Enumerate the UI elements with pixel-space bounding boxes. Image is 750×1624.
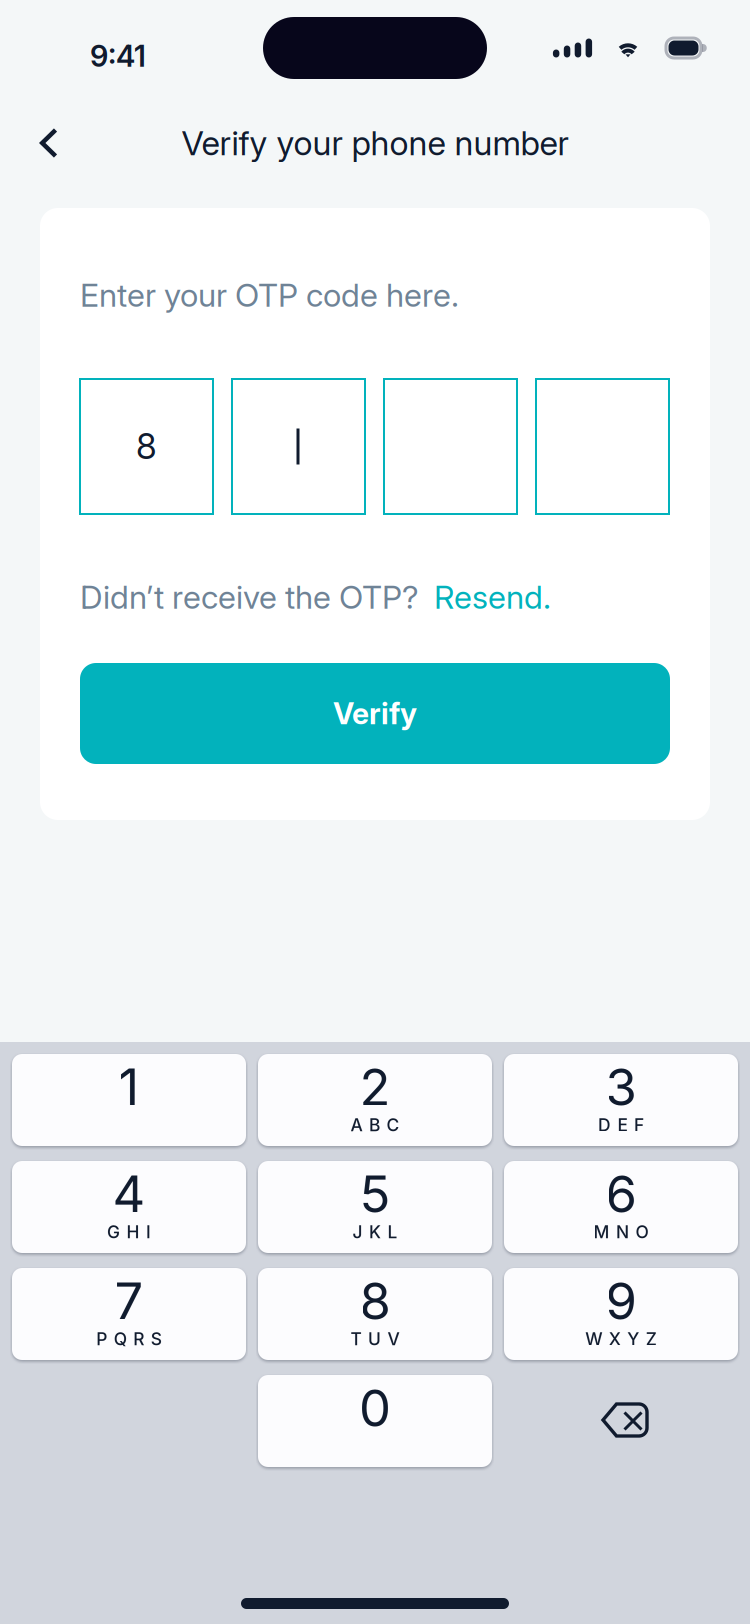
button[interactable]: Resend.: [434, 578, 551, 616]
button[interactable]: 9: [504, 1268, 738, 1360]
button[interactable]: OTP digit: [384, 379, 517, 514]
staticText: Verify: [333, 696, 417, 731]
button[interactable]: 6: [504, 1161, 738, 1253]
button[interactable]: Verify: [80, 663, 670, 764]
button[interactable]: 5: [258, 1161, 492, 1253]
staticText: 0: [359, 1377, 391, 1439]
staticText: DEF: [598, 1114, 644, 1135]
button[interactable]: OTP digit: [536, 379, 669, 514]
button[interactable]: OTP digit: [232, 379, 365, 514]
staticText: ABC: [350, 1114, 399, 1135]
staticText: 5: [359, 1163, 390, 1225]
button[interactable]: Back: [18, 112, 80, 174]
staticText: 8: [359, 1270, 390, 1332]
staticText: 9:41: [90, 38, 146, 74]
staticText: 3: [605, 1056, 636, 1118]
staticText: JKL: [352, 1221, 397, 1242]
staticText: 8: [136, 425, 157, 467]
staticText: MNO: [593, 1221, 648, 1242]
button[interactable]: 7: [12, 1268, 246, 1360]
staticText: 4: [112, 1163, 145, 1225]
button[interactable]: Delete: [504, 1375, 738, 1467]
staticText: 1: [118, 1056, 139, 1118]
staticText: 6: [605, 1163, 636, 1225]
staticText: Resend.: [434, 578, 551, 616]
staticText: Verify your phone number: [181, 123, 568, 163]
button[interactable]: 0: [258, 1375, 492, 1467]
button[interactable]: 1: [12, 1054, 246, 1146]
button[interactable]: 3: [504, 1054, 738, 1146]
staticText: Enter your OTP code here.: [80, 276, 459, 314]
staticText: GHI: [107, 1221, 151, 1242]
button[interactable]: 2: [258, 1054, 492, 1146]
staticText: WXYZ: [585, 1328, 657, 1349]
button[interactable]: 8: [258, 1268, 492, 1360]
staticText: PQRS: [96, 1328, 162, 1349]
staticText: 7: [114, 1270, 143, 1332]
staticText: 2: [359, 1056, 390, 1118]
button[interactable]: OTP digit: [80, 379, 213, 514]
button[interactable]: 4: [12, 1161, 246, 1253]
staticText: 9: [605, 1270, 636, 1332]
staticText: TUV: [350, 1328, 399, 1349]
staticText: Didn’t receive the OTP?: [80, 578, 419, 616]
